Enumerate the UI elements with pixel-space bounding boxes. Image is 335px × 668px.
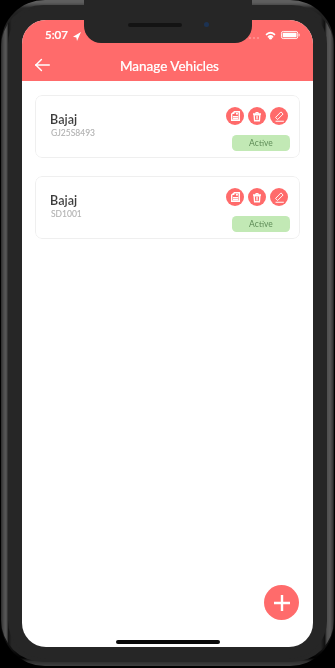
button[interactable]: Edit: [270, 188, 288, 206]
button[interactable]: Delete: [248, 107, 266, 125]
staticText: Active: [249, 138, 273, 148]
staticText: 5:07: [45, 28, 68, 42]
button[interactable]: Documents: [226, 188, 244, 206]
button[interactable]: Add vehicle: [264, 585, 299, 620]
button[interactable]: Active: [232, 135, 290, 151]
button[interactable]: Bajaj: [35, 176, 300, 239]
button[interactable]: Back: [27, 50, 57, 80]
staticText: Active: [249, 219, 273, 229]
button[interactable]: Delete: [248, 188, 266, 206]
staticText: Bajaj: [50, 112, 78, 127]
staticText: GJ25S8493: [51, 128, 95, 138]
button[interactable]: Edit: [270, 107, 288, 125]
staticText: Bajaj: [50, 193, 78, 208]
button[interactable]: Documents: [226, 107, 244, 125]
button[interactable]: Active: [232, 216, 290, 232]
staticText: Manage Vehicles: [120, 58, 219, 74]
staticText: SD1001: [51, 209, 82, 219]
button[interactable]: Bajaj: [35, 95, 300, 158]
